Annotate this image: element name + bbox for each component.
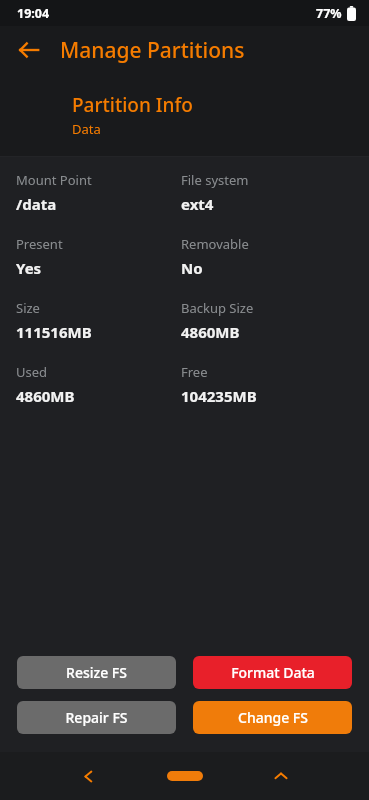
button[interactable]: Back — [6, 27, 52, 73]
staticText: Size — [16, 299, 40, 317]
button[interactable]: Change FS — [193, 701, 352, 734]
staticText: Free — [181, 363, 208, 381]
button[interactable]: Repair FS — [17, 701, 176, 734]
staticText: 19:04 — [17, 5, 50, 22]
staticText: Format Data — [231, 663, 315, 682]
staticText: Change FS — [238, 708, 308, 727]
staticText: Removable — [181, 235, 249, 253]
button[interactable]: Recent apps — [261, 756, 301, 796]
staticText: 104235MB — [181, 386, 257, 406]
button[interactable]: Format Data — [193, 656, 352, 689]
staticText: ext4 — [181, 194, 214, 214]
staticText: Data — [72, 120, 101, 138]
staticText: 4860MB — [181, 322, 240, 342]
staticText: Present — [16, 235, 63, 253]
staticText: Resize FS — [66, 663, 127, 682]
staticText: Backup Size — [181, 299, 254, 317]
staticText: Repair FS — [65, 708, 128, 727]
staticText: File system — [181, 171, 249, 189]
button[interactable]: Resize FS — [17, 656, 176, 689]
button[interactable]: Home — [155, 759, 215, 793]
staticText: Partition Info — [72, 92, 193, 118]
staticText: /data — [16, 194, 57, 214]
staticText: Used — [16, 363, 48, 381]
staticText: Yes — [16, 258, 42, 278]
staticText: Manage Partitions — [60, 36, 245, 65]
button[interactable]: Back — [68, 756, 108, 796]
staticText: No — [181, 258, 203, 278]
staticText: Mount Point — [16, 171, 92, 189]
staticText: 4860MB — [16, 386, 75, 406]
staticText: 111516MB — [16, 322, 92, 342]
staticText: 77% — [316, 5, 342, 22]
